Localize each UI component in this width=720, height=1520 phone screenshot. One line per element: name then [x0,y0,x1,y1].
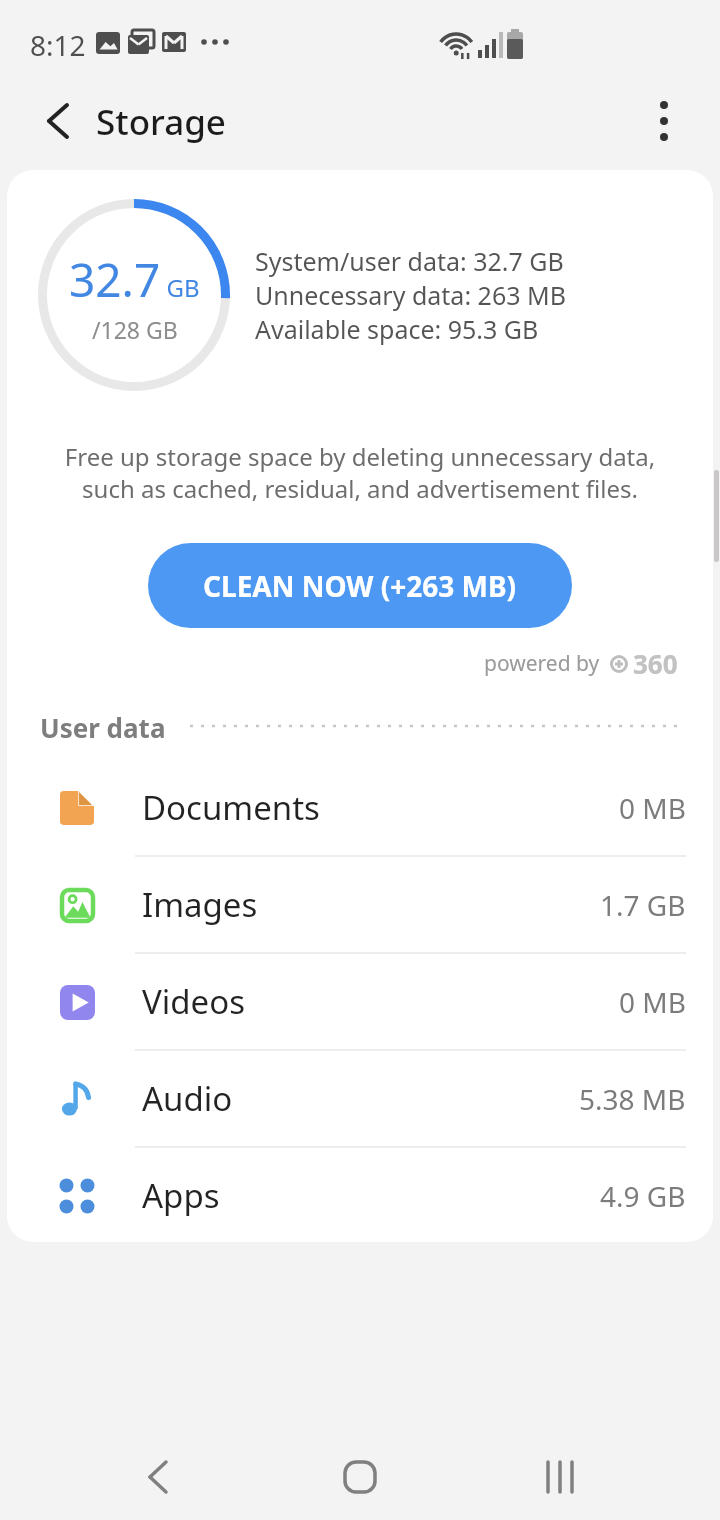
staticText: 0 MB [619,789,686,827]
staticText: powered by [484,649,600,678]
staticText: Videos [142,979,245,1024]
staticText: 1.7 GB [600,886,686,924]
button[interactable] [312,1432,407,1520]
staticText: 32.7 GB [69,248,200,311]
button[interactable]: Audio [7,1051,713,1146]
button[interactable] [512,1432,607,1520]
staticText: 360 [633,646,678,681]
button[interactable]: Documents [7,760,713,855]
staticText: System/user data: 32.7 GB [255,244,564,278]
staticText: 8:12 [30,26,86,64]
button[interactable]: CLEAN NOW (+263 MB) [148,543,572,628]
button[interactable]: Images [7,857,713,952]
staticText: Unnecessary data: 263 MB [255,278,566,312]
staticText: 4.9 GB [600,1177,686,1215]
staticText: 0 MB [619,983,686,1021]
button[interactable]: Videos [7,954,713,1049]
staticText: /128 GB [92,314,178,345]
staticText: Free up storage space by deleting unnece… [7,440,713,505]
staticText: Available space: 95.3 GB [255,312,539,346]
button[interactable]: Apps [7,1148,713,1242]
staticText: User data [40,710,166,745]
staticText: 5.38 MB [579,1080,686,1118]
staticText: Audio [142,1076,233,1121]
staticText: CLEAN NOW (+263 MB) [203,567,517,605]
staticText: Documents [142,785,320,830]
staticText: Apps [142,1173,220,1218]
staticText: Images [142,882,258,927]
button[interactable] [30,88,86,154]
staticText: Storage [96,98,226,146]
button[interactable] [110,1432,205,1520]
button[interactable] [638,88,690,154]
